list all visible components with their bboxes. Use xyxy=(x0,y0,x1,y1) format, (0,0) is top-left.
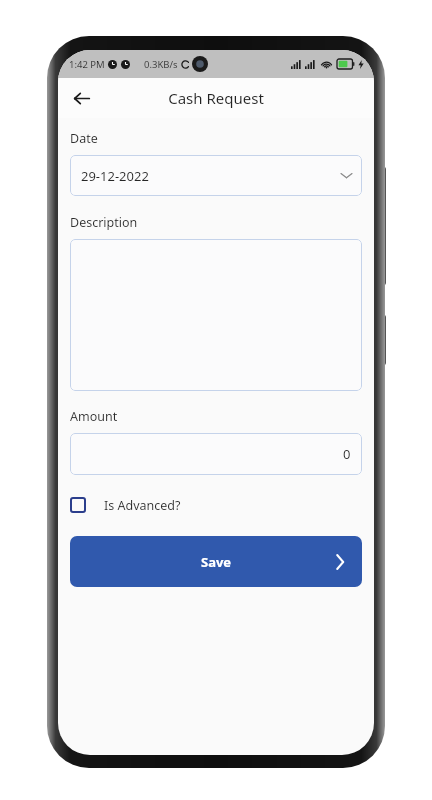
staticText: Cash Request xyxy=(168,88,264,108)
button[interactable]: Save xyxy=(70,536,362,587)
staticText: Date xyxy=(70,130,98,147)
button[interactable]: 0 xyxy=(70,433,362,475)
staticText: Amount xyxy=(70,408,118,425)
staticText: 29-12-2022 xyxy=(81,167,149,185)
staticText: Description xyxy=(70,214,138,231)
button[interactable]: Back xyxy=(63,80,99,116)
staticText: Save xyxy=(201,553,232,571)
button[interactable]: 29-12-2022 xyxy=(70,155,362,196)
staticText: 0 xyxy=(343,445,351,463)
button[interactable]: Is Advanced? xyxy=(70,492,181,518)
staticText: 0.3KB/s xyxy=(144,58,178,71)
button[interactable] xyxy=(70,239,362,391)
staticText: Is Advanced? xyxy=(104,497,181,514)
staticText: 1:42 PM xyxy=(69,58,105,71)
